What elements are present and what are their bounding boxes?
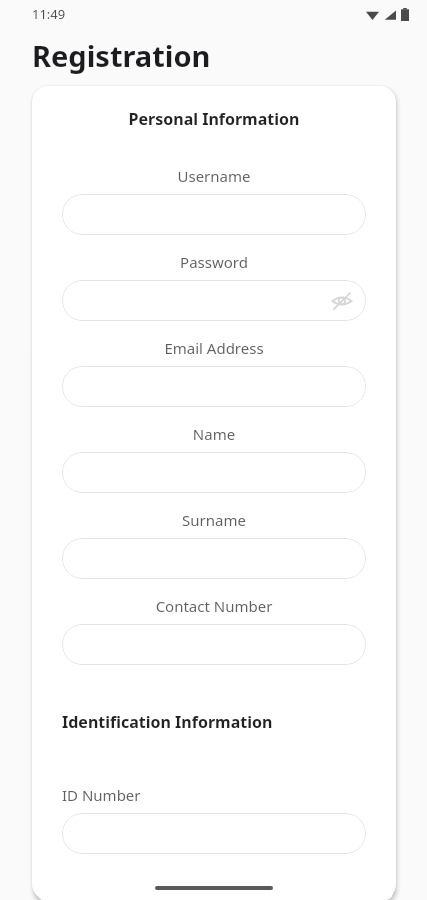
button[interactable]: Toggle password visibility: [62, 280, 366, 321]
button[interactable]: [62, 813, 366, 854]
staticText: Password: [62, 252, 366, 272]
staticText: 11:49: [32, 5, 66, 23]
button[interactable]: [62, 194, 366, 235]
staticText: Name: [62, 424, 366, 444]
button[interactable]: [62, 624, 366, 665]
button[interactable]: [62, 366, 366, 407]
staticText: Username: [62, 166, 366, 186]
button[interactable]: [62, 452, 366, 493]
button[interactable]: [62, 538, 366, 579]
staticText: Personal Information: [62, 108, 366, 130]
button[interactable]: Toggle password visibility: [328, 287, 356, 315]
staticText: ID Number: [62, 785, 366, 805]
staticText: Surname: [62, 510, 366, 530]
staticText: Contact Number: [62, 596, 366, 616]
staticText: Email Address: [62, 338, 366, 358]
staticText: Identification Information: [62, 711, 366, 733]
staticText: Registration: [32, 36, 211, 75]
